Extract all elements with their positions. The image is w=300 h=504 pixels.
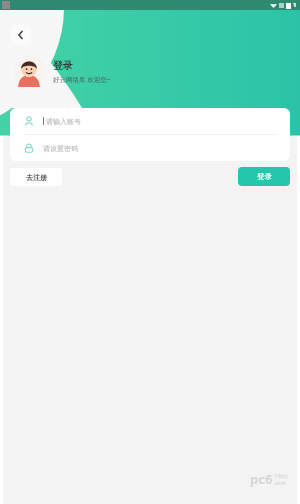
staticText: 请输入账号 bbox=[46, 117, 81, 126]
button[interactable]: 请设置密码 bbox=[10, 135, 290, 161]
staticText: 请设置密码 bbox=[43, 144, 78, 153]
button[interactable]: 去注册 bbox=[10, 168, 62, 186]
button[interactable]: 请输入账号 bbox=[10, 108, 290, 134]
staticText: 1 bbox=[293, 1, 297, 9]
staticText: pc6 bbox=[250, 470, 273, 488]
staticText: .com bbox=[273, 479, 286, 486]
button[interactable]: 登录 bbox=[238, 167, 290, 186]
staticText: 下载站 bbox=[273, 473, 288, 479]
staticText: 好云网络库 欢迎您~ bbox=[53, 75, 111, 84]
button[interactable]: Back bbox=[11, 25, 31, 45]
staticText: 登录 bbox=[257, 172, 272, 181]
staticText: 登录 bbox=[53, 59, 73, 72]
staticText: 去注册 bbox=[26, 173, 47, 182]
